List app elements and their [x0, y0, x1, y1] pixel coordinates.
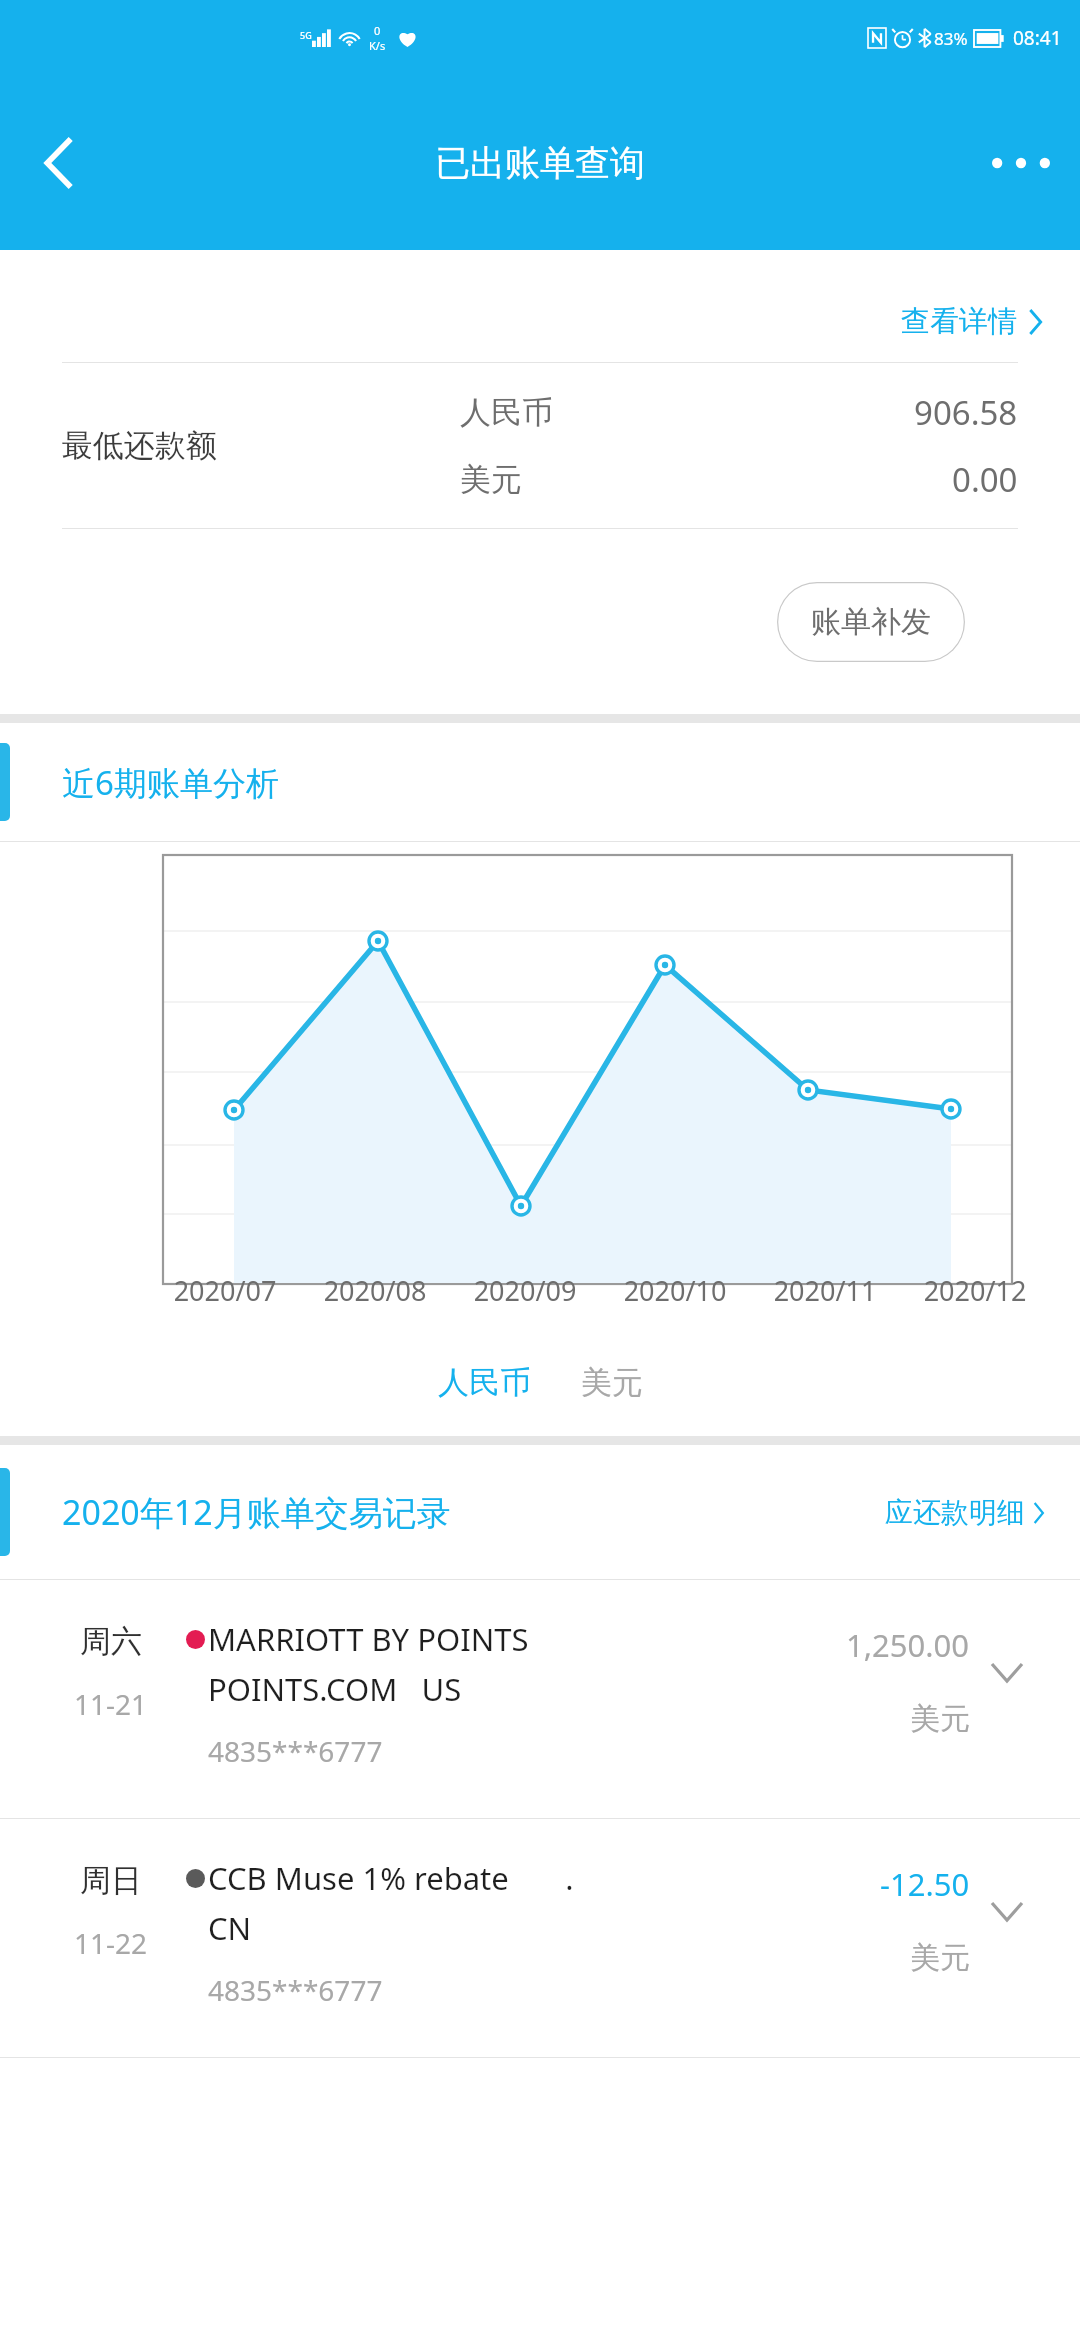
button[interactable]: 美元 [571, 1355, 653, 1410]
staticText: 2020/09 [450, 1272, 600, 1309]
staticText: 83% [934, 27, 968, 50]
staticText: CN [208, 1907, 252, 1949]
staticText: 应还款明细 [885, 1495, 1025, 1530]
staticText: 最低还款额 [62, 426, 217, 465]
staticText: 4835***6777 [208, 1971, 383, 2009]
staticText: 08:41 [1013, 25, 1062, 51]
staticText: 11-21 [74, 1685, 148, 1723]
staticText: 人民币 [460, 393, 553, 432]
button[interactable]: 账单补发 [777, 582, 965, 662]
staticText: 11-22 [74, 1924, 148, 1962]
staticText: 近6期账单分析 [62, 760, 279, 805]
staticText: 2020/12 [900, 1272, 1050, 1309]
staticText: K/s [369, 38, 386, 53]
button[interactable]: 查看详情 [901, 303, 1042, 340]
staticText: 周六 [80, 1622, 142, 1661]
staticText: 906.58 [914, 390, 1018, 435]
button[interactable]: 人民币 [428, 1355, 541, 1410]
staticText: 美元 [910, 1939, 970, 1977]
staticText: -12.50 [880, 1863, 970, 1905]
staticText: 0.00 [952, 457, 1018, 502]
staticText: MARRIOTT BY POINTS [208, 1618, 529, 1660]
staticText: 美元 [581, 1363, 643, 1402]
staticText: 2020年12月账单交易记录 [62, 1489, 451, 1535]
staticText: 2020/11 [750, 1272, 900, 1309]
staticText: 周日 [80, 1861, 142, 1900]
button[interactable]: 周日 [0, 1819, 1080, 2058]
button[interactable]: More options [984, 133, 1058, 193]
staticText: 人民币 [438, 1363, 531, 1402]
staticText: 美元 [910, 1700, 970, 1738]
staticText: 0 [374, 23, 381, 38]
staticText: 1,250.00 [846, 1624, 970, 1666]
staticText: 账单补发 [811, 603, 931, 641]
staticText: CCB Muse 1% rebate . [208, 1857, 574, 1899]
staticText: 查看详情 [901, 303, 1017, 340]
staticText: 美元 [460, 460, 522, 499]
button[interactable]: Back [24, 128, 94, 198]
staticText: 5G [300, 29, 312, 41]
staticText: 2020/08 [300, 1272, 450, 1309]
button[interactable]: 应还款明细 [885, 1495, 1044, 1530]
button[interactable]: 周六 [0, 1580, 1080, 1819]
staticText: POINTS.COM US [208, 1668, 462, 1710]
staticText: 2020/10 [600, 1272, 750, 1309]
staticText: 2020/07 [150, 1272, 300, 1309]
staticText: 4835***6777 [208, 1732, 383, 1770]
staticText: 已出账单查询 [435, 141, 645, 185]
